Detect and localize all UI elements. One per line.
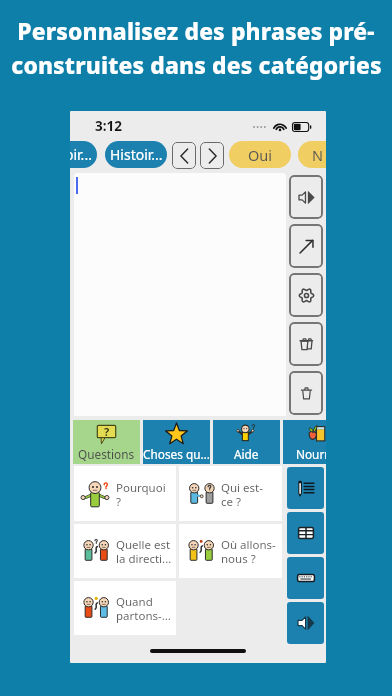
button[interactable]: Settings bbox=[289, 273, 323, 317]
button[interactable]: Quand partons-... bbox=[74, 581, 176, 635]
button[interactable]: Keyboard bbox=[287, 557, 324, 599]
button[interactable] bbox=[74, 173, 286, 416]
button[interactable]: Aide bbox=[213, 420, 280, 464]
staticText: Aide bbox=[234, 446, 259, 462]
button[interactable]: Delete word bbox=[289, 322, 323, 366]
staticText: Histoir... bbox=[110, 145, 163, 164]
staticText: Oui bbox=[248, 145, 273, 165]
staticText: N bbox=[312, 145, 324, 165]
staticText: Quand partons-... bbox=[116, 594, 171, 623]
staticText: Questions bbox=[78, 446, 135, 462]
button[interactable]: Speak bbox=[287, 602, 324, 644]
staticText: ? bbox=[104, 424, 110, 439]
button[interactable]: Speak bbox=[289, 175, 323, 219]
button[interactable]: Delete all bbox=[289, 371, 323, 415]
button[interactable]: Grid bbox=[287, 512, 324, 554]
button[interactable]: ? bbox=[73, 420, 140, 464]
staticText: Quelle est la directi... bbox=[116, 537, 172, 566]
button[interactable]: Previous page bbox=[172, 142, 196, 169]
button[interactable]: Pourquoi ? bbox=[74, 466, 176, 521]
button[interactable]: Oui bbox=[229, 141, 291, 168]
staticText: Pourquoi ? bbox=[116, 480, 166, 509]
button[interactable]: Quelle est la directi... bbox=[74, 524, 176, 578]
button[interactable]: Histoir... bbox=[105, 141, 167, 168]
button[interactable]: Next page bbox=[200, 142, 224, 169]
button[interactable]: Nourrit bbox=[283, 420, 326, 464]
staticText: oir... bbox=[70, 145, 92, 164]
staticText: Choses qu... bbox=[143, 446, 210, 462]
button[interactable]: Edit bbox=[287, 467, 324, 509]
staticText: Qui est- ce ? bbox=[221, 480, 263, 509]
button[interactable]: N bbox=[298, 141, 326, 168]
button[interactable]: Choses qu... bbox=[143, 420, 210, 464]
button[interactable]: Qui est- ce ? bbox=[179, 466, 282, 521]
staticText: 3:12 bbox=[95, 117, 122, 135]
button[interactable]: Où allons- nous ? bbox=[179, 524, 282, 578]
staticText: Où allons- nous ? bbox=[221, 537, 276, 566]
button[interactable]: oir... bbox=[70, 141, 97, 168]
staticText: Personnalisez des phrases pré- bbox=[17, 16, 375, 47]
button[interactable]: Expand bbox=[289, 224, 323, 268]
staticText: construites dans des catégories bbox=[11, 50, 382, 81]
staticText: Nourrit bbox=[296, 446, 326, 462]
